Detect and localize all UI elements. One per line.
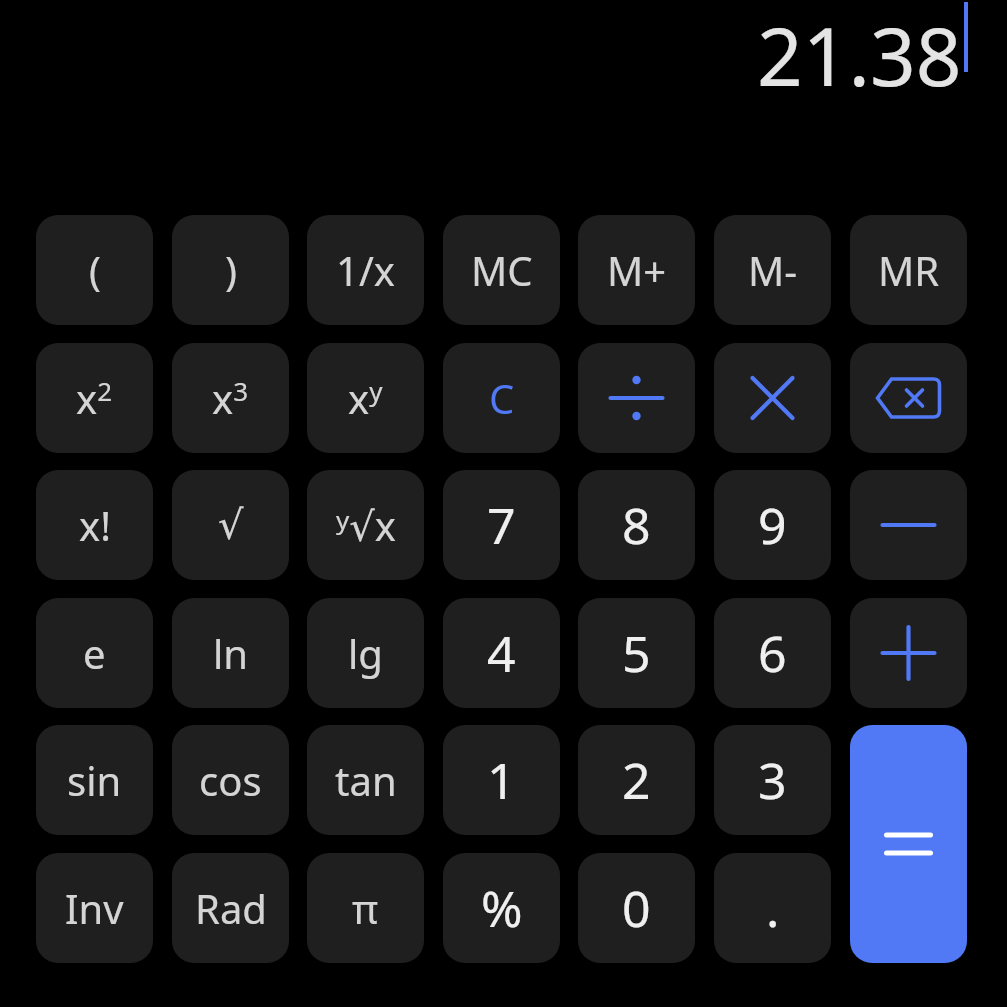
button[interactable]: M- [714, 215, 831, 325]
staticText: cos [199, 753, 262, 807]
staticText: 5 [622, 619, 651, 687]
button[interactable]: sin [36, 725, 153, 835]
staticText: Rad [195, 881, 267, 935]
staticText: lg [348, 626, 383, 680]
staticText: ) [225, 243, 237, 297]
staticText: 6 [758, 619, 787, 687]
button[interactable]: M+ [578, 215, 695, 325]
staticText: Inv [65, 881, 124, 935]
button[interactable]: ʸ√x [307, 470, 424, 580]
button[interactable]: e [36, 598, 153, 708]
button[interactable]: Rad [172, 853, 289, 963]
staticText: tan [335, 753, 397, 807]
button[interactable]: Multiply [714, 343, 831, 453]
staticText: 1/x [336, 243, 395, 297]
button[interactable]: MR [850, 215, 967, 325]
staticText: sin [67, 753, 122, 807]
button[interactable]: tan [307, 725, 424, 835]
staticText: 9 [758, 491, 787, 559]
staticText: x3 [212, 371, 249, 425]
staticText: x! [79, 498, 111, 552]
button[interactable]: √ [172, 470, 289, 580]
staticText: M+ [607, 243, 667, 297]
button[interactable]: . [714, 853, 831, 963]
staticText: ʸ√x [336, 498, 396, 552]
button[interactable]: Equals [850, 725, 967, 963]
button[interactable]: Inv [36, 853, 153, 963]
button[interactable]: ln [172, 598, 289, 708]
staticText: 0 [622, 874, 651, 942]
button[interactable]: 2 [578, 725, 695, 835]
button[interactable]: Minus [850, 470, 967, 580]
button[interactable]: cos [172, 725, 289, 835]
button[interactable]: 7 [443, 470, 560, 580]
button[interactable]: Backspace [850, 343, 967, 453]
button[interactable]: 1/x [307, 215, 424, 325]
staticText: 21.38 [757, 0, 962, 90]
button[interactable]: 8 [578, 470, 695, 580]
button[interactable]: 3 [714, 725, 831, 835]
staticText: 7 [487, 491, 516, 559]
staticText: 1 [487, 746, 516, 814]
staticText: ( [89, 243, 101, 297]
staticText: 4 [487, 619, 516, 687]
staticText: e [83, 626, 106, 680]
staticText: π [352, 881, 379, 935]
staticText: ln [213, 626, 249, 680]
staticText: √ [218, 502, 244, 549]
button[interactable]: x! [36, 470, 153, 580]
button[interactable]: Divide [578, 343, 695, 453]
button[interactable]: 5 [578, 598, 695, 708]
button[interactable]: MC [443, 215, 560, 325]
staticText: . [766, 874, 780, 942]
staticText: x2 [76, 371, 113, 425]
button[interactable]: xy [307, 343, 424, 453]
button[interactable]: 0 [578, 853, 695, 963]
button[interactable]: π [307, 853, 424, 963]
staticText: 2 [622, 746, 651, 814]
button[interactable]: 9 [714, 470, 831, 580]
staticText: 3 [758, 746, 787, 814]
staticText: MR [878, 243, 940, 297]
staticText: M- [748, 243, 798, 297]
staticText: MC [471, 243, 533, 297]
staticText: 8 [622, 491, 651, 559]
staticText: xy [348, 371, 383, 425]
button[interactable]: Plus [850, 598, 967, 708]
button[interactable]: x2 [36, 343, 153, 453]
button[interactable]: 4 [443, 598, 560, 708]
staticText: C [489, 371, 515, 425]
button[interactable]: C [443, 343, 560, 453]
staticText: % [481, 874, 523, 942]
button[interactable]: lg [307, 598, 424, 708]
button[interactable]: ) [172, 215, 289, 325]
button[interactable]: 6 [714, 598, 831, 708]
button[interactable]: 1 [443, 725, 560, 835]
button[interactable]: % [443, 853, 560, 963]
button[interactable]: ( [36, 215, 153, 325]
button[interactable]: x3 [172, 343, 289, 453]
